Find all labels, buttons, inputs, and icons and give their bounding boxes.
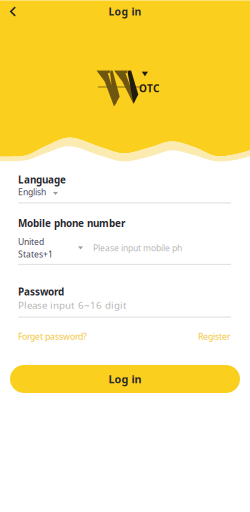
button[interactable]: Log in [10, 365, 240, 393]
staticText: Forget password? [18, 331, 87, 342]
button[interactable]: English [18, 186, 231, 197]
staticText: Language [18, 173, 66, 186]
staticText: States+1 [18, 248, 53, 260]
button[interactable]: Back [0, 0, 26, 23]
button[interactable]: Forget password? [18, 331, 87, 342]
button[interactable]: United [18, 237, 83, 259]
staticText: English [18, 186, 46, 198]
button[interactable]: Register [198, 331, 231, 342]
staticText: Log in [108, 372, 141, 386]
staticText: Register [198, 331, 231, 342]
staticText: Please input 6~16 digit [18, 298, 127, 312]
staticText: Log in [108, 4, 141, 19]
staticText: United [18, 236, 44, 247]
staticText: Password [18, 285, 64, 298]
staticText: OTC [139, 81, 159, 95]
staticText: Mobile phone number [18, 216, 125, 230]
staticText: Please input mobile ph [93, 242, 182, 254]
